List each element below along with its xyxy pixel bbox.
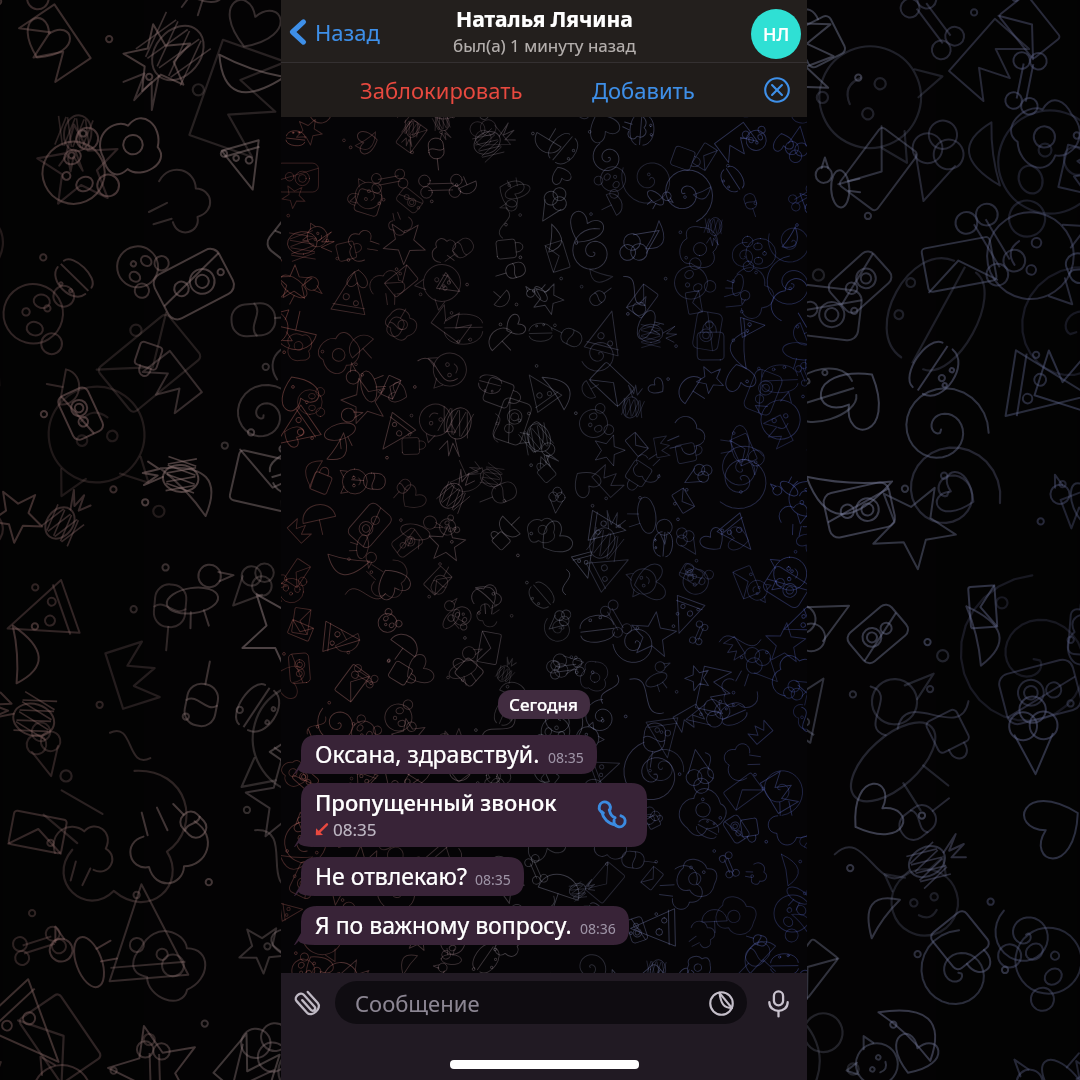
button[interactable]: Оксана, здравствуй. — [294, 735, 597, 774]
staticText: Назад — [315, 17, 380, 47]
staticText: Сегодня — [509, 693, 579, 716]
button[interactable]: Attach file — [287, 982, 329, 1024]
staticText: Оксана, здравствуй. — [315, 738, 540, 769]
button[interactable]: Close — [756, 69, 798, 111]
staticText: Пропущенный звонок — [315, 787, 557, 817]
button[interactable]: Record voice message — [757, 982, 799, 1024]
button[interactable]: Не отвлекаю? — [294, 857, 524, 896]
staticText: Не отвлекаю? — [315, 860, 467, 891]
staticText: Добавить — [592, 75, 695, 105]
button[interactable]: Сегодня — [498, 690, 590, 719]
button[interactable]: Пропущенный звонок — [294, 783, 647, 847]
button[interactable]: Call back — [593, 795, 631, 833]
button[interactable]: Сообщение — [335, 981, 747, 1024]
staticText: Заблокировать — [360, 75, 523, 105]
staticText: 08:35 — [475, 870, 511, 889]
button[interactable]: Заблокировать — [348, 65, 535, 115]
staticText: был(а) 1 минуту назад — [453, 34, 636, 57]
staticText: 08:35 — [548, 748, 584, 767]
button[interactable]: Назад — [281, 7, 388, 57]
staticText: 08:35 — [333, 818, 377, 841]
staticText: 08:36 — [580, 919, 616, 938]
button[interactable]: Добавить — [580, 65, 707, 115]
staticText: Сообщение — [355, 988, 480, 1018]
button[interactable]: Stickers — [706, 988, 736, 1018]
button[interactable]: Я по важному вопросу. — [294, 906, 629, 945]
staticText: Наталья Лячина — [456, 5, 633, 34]
staticText: Я по важному вопросу. — [315, 909, 572, 940]
button[interactable]: Profile avatar — [751, 9, 801, 59]
staticText: НЛ — [763, 22, 790, 47]
